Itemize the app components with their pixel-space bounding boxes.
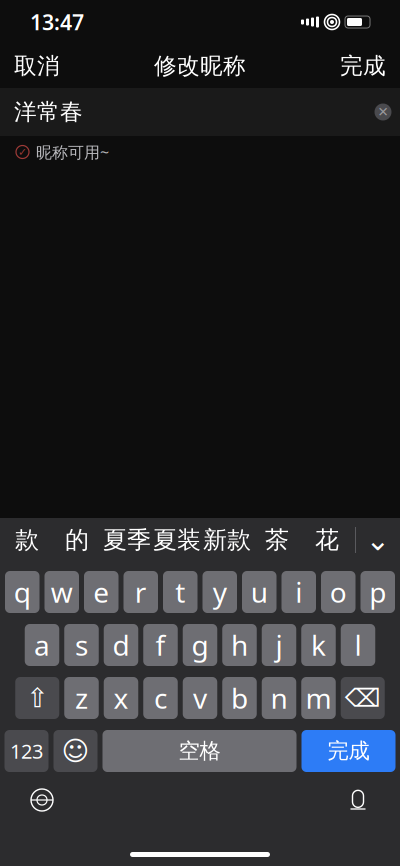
button[interactable]: 完成 xyxy=(326,44,400,88)
button[interactable]: 123 xyxy=(4,730,48,772)
staticText: s xyxy=(75,626,88,664)
staticText: g xyxy=(191,626,208,664)
staticText: 洋常春 xyxy=(14,98,83,126)
button[interactable]: q xyxy=(5,571,39,613)
button[interactable]: m xyxy=(301,677,336,719)
button[interactable]: Delete xyxy=(341,677,385,719)
staticText: u xyxy=(251,573,268,611)
button[interactable]: 款 xyxy=(2,518,52,562)
button[interactable]: y xyxy=(202,571,237,613)
staticText: 123 xyxy=(10,738,43,764)
staticText: ⇧ xyxy=(26,683,48,713)
button[interactable]: e xyxy=(84,571,118,613)
button[interactable]: 夏季 xyxy=(102,518,152,562)
button[interactable]: u xyxy=(242,571,276,613)
staticText: y xyxy=(213,573,227,611)
button[interactable]: 夏装 xyxy=(152,518,202,562)
staticText: 夏季 xyxy=(103,525,151,555)
staticText: b xyxy=(231,679,248,717)
button[interactable]: 完成 xyxy=(301,730,395,772)
button[interactable]: o xyxy=(321,571,355,613)
button[interactable]: f xyxy=(143,624,178,666)
staticText: 款 xyxy=(15,525,39,555)
staticText: v xyxy=(193,679,207,717)
button[interactable]: 取消 xyxy=(0,44,74,88)
button[interactable]: Shift xyxy=(15,677,59,719)
button[interactable]: Next keyboard xyxy=(20,780,64,820)
staticText: 的 xyxy=(65,525,89,555)
staticText: ✕ xyxy=(377,104,388,119)
staticText: x xyxy=(113,679,128,717)
button[interactable]: j xyxy=(262,624,296,666)
staticText: m xyxy=(305,679,331,717)
staticText: l xyxy=(354,626,361,664)
staticText: 完成 xyxy=(327,738,369,764)
staticText: e xyxy=(93,573,109,611)
button[interactable]: 的 xyxy=(52,518,102,562)
button[interactable]: w xyxy=(44,571,79,613)
staticText: q xyxy=(14,573,31,611)
button[interactable]: v xyxy=(183,677,217,719)
button[interactable]: k xyxy=(301,624,336,666)
staticText: ✓ xyxy=(18,146,27,158)
button[interactable]: Clear text xyxy=(366,95,400,129)
staticText: ⌄ xyxy=(365,523,390,557)
staticText: h xyxy=(231,626,248,664)
staticText: ⌫ xyxy=(345,684,381,712)
staticText: 花 xyxy=(315,525,339,555)
button[interactable]: Dictate xyxy=(336,780,380,820)
staticText: 取消 xyxy=(14,52,60,80)
staticText: t xyxy=(175,573,185,611)
staticText: 昵称可用~ xyxy=(36,141,109,163)
staticText: o xyxy=(330,573,347,611)
staticText: k xyxy=(311,626,326,664)
button[interactable]: l xyxy=(341,624,375,666)
staticText: i xyxy=(295,573,302,611)
staticText: d xyxy=(112,626,129,664)
button[interactable]: 新款 xyxy=(202,518,252,562)
button[interactable]: Hide suggestions xyxy=(356,518,400,562)
staticText: w xyxy=(51,573,73,611)
button[interactable]: b xyxy=(222,677,257,719)
staticText: r xyxy=(135,573,147,611)
button[interactable]: 茶 xyxy=(252,518,302,562)
button[interactable]: h xyxy=(222,624,257,666)
button[interactable]: c xyxy=(143,677,178,719)
staticText: 13:47 xyxy=(30,8,84,36)
button[interactable]: a xyxy=(25,624,59,666)
staticText: 空格 xyxy=(178,738,220,764)
button[interactable]: s xyxy=(64,624,99,666)
staticText: 新款 xyxy=(203,525,251,555)
button[interactable]: Emoji xyxy=(53,730,97,772)
staticText: 茶 xyxy=(265,525,289,555)
button[interactable]: g xyxy=(183,624,217,666)
button[interactable]: p xyxy=(360,571,395,613)
button[interactable]: 空格 xyxy=(102,730,296,772)
button[interactable]: z xyxy=(64,677,99,719)
staticText: 修改昵称 xyxy=(154,52,246,80)
button[interactable]: r xyxy=(123,571,158,613)
staticText: c xyxy=(154,679,167,717)
staticText: j xyxy=(275,626,282,664)
button[interactable]: 花 xyxy=(302,518,352,562)
button[interactable]: x xyxy=(104,677,138,719)
button[interactable]: t xyxy=(163,571,197,613)
button[interactable]: n xyxy=(262,677,296,719)
staticText: p xyxy=(369,573,386,611)
staticText: f xyxy=(155,626,165,664)
button[interactable]: i xyxy=(281,571,316,613)
staticText: a xyxy=(34,626,50,664)
staticText: z xyxy=(75,679,88,717)
staticText: 完成 xyxy=(340,52,386,80)
button[interactable]: d xyxy=(104,624,138,666)
staticText: 夏装 xyxy=(153,525,201,555)
staticText: n xyxy=(270,679,287,717)
staticText: ☺ xyxy=(61,736,89,766)
